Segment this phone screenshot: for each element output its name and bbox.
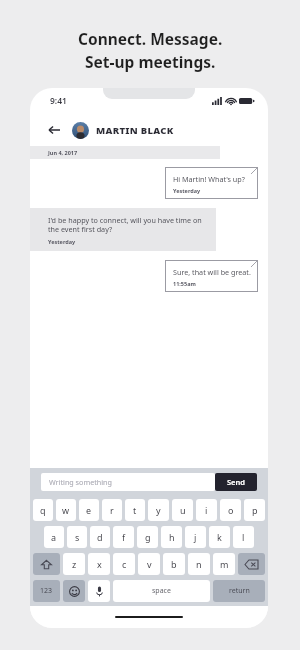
- staticText: Writing something: [49, 477, 112, 487]
- staticText: 9:41: [50, 95, 67, 107]
- button[interactable]: r: [102, 499, 122, 521]
- staticText: Set-up meetings.: [85, 51, 216, 72]
- staticText: v: [147, 558, 152, 570]
- staticText: z: [72, 558, 77, 570]
- staticText: Yesterday: [48, 238, 76, 245]
- button[interactable]: g: [137, 526, 158, 548]
- button[interactable]: 123: [33, 580, 60, 602]
- staticText: space: [152, 586, 171, 596]
- button[interactable]: l: [233, 526, 254, 548]
- staticText: j: [194, 531, 197, 543]
- button[interactable]: z: [63, 553, 85, 575]
- staticText: Yesterday: [173, 187, 201, 194]
- staticText: a: [51, 531, 57, 543]
- staticText: y: [156, 504, 161, 516]
- staticText: x: [97, 558, 102, 570]
- button[interactable]: t: [125, 499, 145, 521]
- button[interactable]: Sure, that will be great.: [165, 260, 258, 292]
- button[interactable]: k: [209, 526, 230, 548]
- button[interactable]: d: [90, 526, 110, 548]
- button[interactable]: q: [33, 499, 53, 521]
- button[interactable]: n: [188, 553, 210, 575]
- staticText: Connect. Message.: [78, 28, 223, 49]
- staticText: e: [86, 504, 92, 516]
- staticText: k: [217, 531, 222, 543]
- button[interactable]: w: [56, 499, 76, 521]
- staticText: f: [122, 531, 126, 543]
- button[interactable]: i: [196, 499, 217, 521]
- staticText: MARTIN BLACK: [96, 124, 174, 137]
- staticText: I'd be happy to connect, will you have t…: [48, 215, 208, 235]
- staticText: 123: [40, 586, 53, 596]
- staticText: o: [228, 504, 234, 516]
- staticText: p: [252, 504, 258, 516]
- button[interactable]: Back: [44, 120, 64, 140]
- button[interactable]: p: [244, 499, 265, 521]
- button[interactable]: u: [172, 499, 193, 521]
- button[interactable]: return: [213, 580, 265, 602]
- button[interactable]: o: [220, 499, 241, 521]
- button[interactable]: h: [161, 526, 182, 548]
- button[interactable]: s: [67, 526, 87, 548]
- staticText: Jun 4, 2017: [48, 149, 78, 156]
- staticText: u: [180, 504, 186, 516]
- button[interactable]: Writing something: [41, 473, 215, 491]
- button[interactable]: Send: [215, 473, 257, 491]
- staticText: return: [229, 586, 250, 596]
- button[interactable]: space: [113, 580, 210, 602]
- button[interactable]: Microphone: [88, 580, 110, 602]
- button[interactable]: Emoji: [63, 580, 85, 602]
- button[interactable]: b: [163, 553, 185, 575]
- button[interactable]: I'd be happy to connect, will you have t…: [30, 208, 216, 251]
- button[interactable]: x: [88, 553, 110, 575]
- staticText: h: [169, 531, 175, 543]
- staticText: Send: [227, 477, 245, 487]
- button[interactable]: c: [113, 553, 135, 575]
- staticText: l: [242, 531, 245, 543]
- staticText: t: [133, 504, 137, 516]
- button[interactable]: m: [213, 553, 235, 575]
- staticText: n: [196, 558, 202, 570]
- button[interactable]: f: [113, 526, 134, 548]
- staticText: d: [97, 531, 103, 543]
- button[interactable]: j: [185, 526, 206, 548]
- staticText: q: [40, 504, 46, 516]
- button[interactable]: Hi Martin! What's up?: [165, 167, 258, 199]
- staticText: g: [145, 531, 151, 543]
- button[interactable]: v: [138, 553, 160, 575]
- staticText: i: [205, 504, 208, 516]
- staticText: m: [220, 558, 229, 570]
- button[interactable]: y: [148, 499, 169, 521]
- staticText: s: [75, 531, 80, 543]
- staticText: w: [62, 504, 70, 516]
- button[interactable]: a: [44, 526, 64, 548]
- staticText: b: [171, 558, 177, 570]
- button[interactable]: Shift: [33, 553, 60, 575]
- staticText: Sure, that will be great.: [173, 267, 251, 277]
- staticText: r: [110, 504, 114, 516]
- staticText: Hi Martin! What's up?: [173, 174, 245, 184]
- staticText: c: [122, 558, 127, 570]
- staticText: 11:55am: [173, 280, 196, 287]
- button[interactable]: Backspace: [238, 553, 265, 575]
- button[interactable]: e: [79, 499, 99, 521]
